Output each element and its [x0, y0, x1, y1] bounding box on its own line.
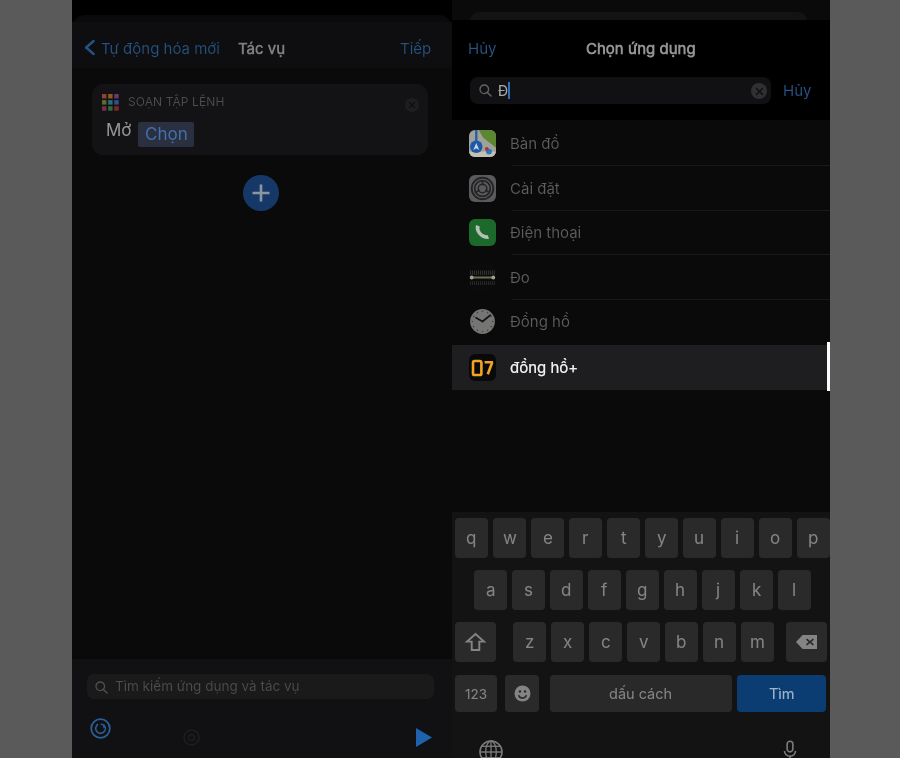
button[interactable]: i: [721, 518, 754, 558]
staticText: w: [503, 528, 517, 549]
button[interactable]: Đồng hồ: [452, 299, 830, 344]
staticText: m: [750, 632, 765, 653]
button[interactable]: v: [627, 622, 660, 662]
staticText: q: [466, 528, 477, 549]
button[interactable]: Thêm tác vụ: [243, 175, 279, 211]
staticText: v: [639, 632, 649, 653]
button[interactable]: Xóa tác vụ: [405, 98, 419, 112]
button[interactable]: Hủy: [783, 81, 812, 99]
button[interactable]: y: [645, 518, 678, 558]
button[interactable]: p: [797, 518, 830, 558]
staticText: Cài đặt: [510, 179, 560, 197]
button[interactable]: SOẠN TẬP LỆNH: [92, 84, 428, 155]
button[interactable]: Quay lại: [84, 38, 96, 57]
button[interactable]: x: [551, 622, 584, 662]
button[interactable]: Xóa văn bản: [751, 83, 767, 99]
button[interactable]: j: [702, 570, 735, 610]
button[interactable]: m: [741, 622, 774, 662]
staticText: Tìm kiếm ứng dụng và tác vụ: [115, 678, 300, 694]
staticText: Chọn: [145, 124, 188, 145]
staticText: Tự động hóa mới: [101, 39, 220, 57]
button[interactable]: u: [683, 518, 716, 558]
button[interactable]: t: [607, 518, 640, 558]
button[interactable]: Chạy: [416, 728, 432, 747]
staticText: z: [525, 632, 535, 653]
button[interactable]: Tiếp: [400, 39, 432, 57]
staticText: a: [486, 580, 496, 601]
button[interactable]: c: [589, 622, 622, 662]
button[interactable]: Cài đặt: [452, 166, 830, 211]
staticText: c: [601, 632, 611, 653]
button[interactable]: a: [474, 570, 507, 610]
button[interactable]: dấu cách: [550, 675, 732, 712]
staticText: Đồng hồ: [510, 312, 570, 330]
staticText: k: [752, 580, 762, 601]
button[interactable]: Đ: [470, 77, 771, 104]
staticText: Bàn đồ: [510, 134, 560, 152]
button[interactable]: Hoàn tác: [90, 718, 111, 739]
staticText: Đ: [498, 82, 509, 99]
button[interactable]: n: [703, 622, 736, 662]
staticText: Chọn ứng dụng: [586, 39, 696, 57]
button[interactable]: z: [513, 622, 546, 662]
button[interactable]: Điện thoại: [452, 210, 830, 255]
staticText: Mở: [106, 120, 132, 141]
staticText: Hủy: [468, 39, 497, 57]
button[interactable]: g: [626, 570, 659, 610]
staticText: y: [657, 528, 667, 549]
button[interactable]: r: [569, 518, 602, 558]
staticText: Hủy: [783, 81, 812, 99]
staticText: o: [770, 528, 781, 549]
button[interactable]: h: [664, 570, 697, 610]
button[interactable]: Đo: [452, 255, 830, 300]
button[interactable]: e: [531, 518, 564, 558]
staticText: SOẠN TẬP LỆNH: [128, 94, 225, 109]
button[interactable]: Tìm kiếm ứng dụng và tác vụ: [87, 674, 434, 699]
button[interactable]: s: [512, 570, 545, 610]
staticText: Tìm: [769, 685, 795, 703]
staticText: Đo: [510, 268, 530, 286]
button[interactable]: w: [493, 518, 526, 558]
staticText: j: [716, 580, 721, 601]
staticText: u: [694, 528, 705, 549]
button[interactable]: Tìm: [737, 675, 826, 712]
staticText: n: [714, 632, 725, 653]
staticText: s: [524, 580, 533, 601]
button[interactable]: o: [759, 518, 792, 558]
staticText: d: [561, 580, 572, 601]
staticText: x: [563, 632, 573, 653]
button[interactable]: k: [740, 570, 773, 610]
staticText: b: [676, 632, 687, 653]
staticText: t: [621, 528, 627, 549]
button[interactable]: Xóa: [786, 622, 827, 662]
staticText: Tiếp: [400, 39, 432, 57]
button[interactable]: Cài đặt: [183, 729, 200, 746]
staticText: l: [792, 580, 797, 601]
staticText: g: [637, 580, 648, 601]
button[interactable]: Nhập bằng giọng nói: [779, 740, 801, 758]
staticText: p: [808, 528, 819, 549]
button[interactable]: Biểu tượng cảm xúc: [505, 675, 539, 712]
staticText: f: [601, 580, 608, 601]
button[interactable]: Đổi bàn phím: [479, 740, 503, 758]
button[interactable]: Bàn đồ: [452, 121, 830, 166]
button[interactable]: q: [455, 518, 488, 558]
button[interactable]: 123: [455, 675, 497, 712]
button[interactable]: Shift: [455, 622, 496, 662]
staticText: i: [735, 528, 740, 549]
staticText: đồng hồ+: [510, 358, 579, 376]
button[interactable]: đồng hồ+: [452, 345, 830, 390]
button[interactable]: Tự động hóa mới: [101, 39, 220, 57]
staticText: Điện thoại: [510, 223, 582, 241]
button[interactable]: b: [665, 622, 698, 662]
staticText: h: [675, 580, 686, 601]
button[interactable]: Hủy: [468, 39, 497, 57]
staticText: r: [582, 528, 589, 549]
staticText: e: [543, 528, 553, 549]
staticText: 123: [465, 686, 488, 702]
staticText: dấu cách: [609, 685, 673, 703]
button[interactable]: d: [550, 570, 583, 610]
button[interactable]: f: [588, 570, 621, 610]
button[interactable]: l: [778, 570, 811, 610]
staticText: Tác vụ: [238, 39, 286, 57]
